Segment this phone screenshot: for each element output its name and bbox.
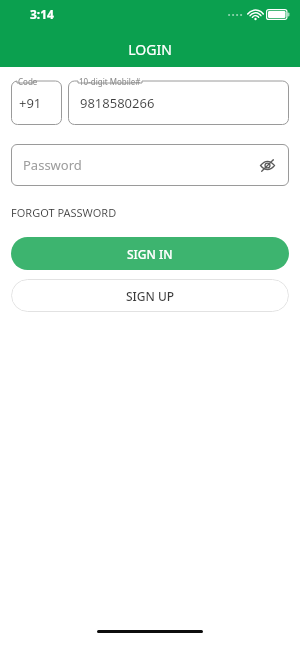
staticText: Password: [23, 156, 82, 174]
button[interactable]: SIGN IN: [11, 237, 289, 270]
staticText: LOGIN: [128, 40, 172, 59]
staticText: FORGOT PASSWORD: [11, 205, 117, 220]
staticText: SIGN IN: [127, 246, 173, 262]
staticText: 10-digit Mobile#: [79, 76, 141, 87]
button[interactable]: 10-digit Mobile#: [68, 75, 289, 125]
button[interactable]: SIGN UP: [11, 279, 289, 312]
button[interactable]: Code: [11, 75, 62, 125]
staticText: +91: [19, 94, 42, 112]
button[interactable]: Password: [11, 144, 289, 186]
staticText: 3:14: [30, 6, 54, 22]
button[interactable]: Show password: [253, 151, 281, 179]
button[interactable]: FORGOT PASSWORD: [11, 203, 117, 222]
staticText: 9818580266: [80, 94, 155, 112]
staticText: Code: [18, 76, 38, 87]
staticText: SIGN UP: [126, 288, 175, 304]
